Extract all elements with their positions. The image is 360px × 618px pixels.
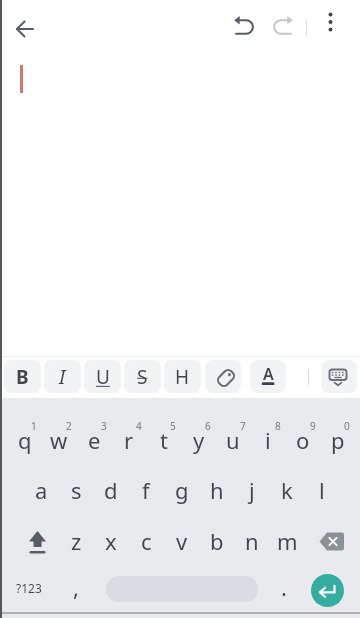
button[interactable]: p — [321, 417, 355, 463]
staticText: s — [71, 475, 82, 505]
staticText: q — [18, 425, 32, 455]
staticText: y — [193, 425, 205, 455]
staticText: b — [210, 526, 224, 556]
button[interactable]: y — [182, 417, 216, 463]
button[interactable]: S — [124, 360, 161, 393]
staticText: c — [141, 526, 152, 556]
button[interactable] — [311, 574, 344, 607]
button[interactable]: a — [24, 467, 58, 513]
button[interactable]: I — [44, 360, 81, 393]
button[interactable]: f — [129, 467, 163, 513]
staticText: e — [88, 425, 101, 455]
button[interactable]: x — [94, 518, 128, 564]
button[interactable]: , — [63, 572, 89, 602]
button[interactable]: . — [271, 572, 297, 602]
button[interactable]: o — [286, 417, 320, 463]
button[interactable]: g — [165, 467, 199, 513]
button[interactable]: z — [59, 518, 93, 564]
button[interactable] — [9, 13, 41, 45]
button[interactable]: r — [112, 417, 146, 463]
button[interactable]: n — [235, 518, 269, 564]
staticText: 6 — [205, 419, 211, 433]
button[interactable]: u — [216, 417, 250, 463]
button[interactable]: H — [164, 360, 201, 393]
button[interactable] — [321, 360, 357, 393]
button[interactable]: A — [250, 360, 286, 393]
button[interactable]: t — [147, 417, 181, 463]
button[interactable]: b — [200, 518, 234, 564]
button[interactable]: B — [4, 360, 41, 393]
button[interactable]: m — [270, 518, 304, 564]
staticText: 5 — [170, 419, 176, 433]
button[interactable] — [205, 360, 241, 393]
staticText: H — [175, 364, 190, 390]
staticText: B — [16, 364, 29, 390]
staticText: a — [35, 475, 48, 505]
button[interactable]: q — [8, 417, 42, 463]
staticText: 3 — [101, 419, 107, 433]
staticText: U — [96, 364, 110, 390]
button[interactable]: i — [251, 417, 285, 463]
staticText: 8 — [275, 419, 281, 433]
button[interactable]: ?123 — [7, 573, 51, 603]
button[interactable] — [20, 525, 56, 558]
staticText: w — [50, 425, 68, 455]
staticText: h — [210, 475, 224, 505]
staticText: ?123 — [16, 580, 42, 596]
staticText: u — [226, 425, 240, 455]
button[interactable]: l — [305, 467, 339, 513]
staticText: l — [319, 475, 325, 505]
staticText: S — [137, 364, 148, 390]
staticText: A — [263, 363, 274, 385]
staticText: 7 — [240, 419, 246, 433]
button[interactable]: k — [270, 467, 304, 513]
staticText: 4 — [136, 419, 142, 433]
staticText: j — [249, 475, 255, 505]
staticText: f — [142, 475, 150, 505]
staticText: 0 — [344, 419, 350, 433]
button[interactable] — [314, 525, 350, 558]
staticText: , — [73, 572, 79, 602]
button[interactable]: U — [84, 360, 121, 393]
staticText: v — [176, 526, 188, 556]
staticText: o — [296, 425, 310, 455]
staticText: 2 — [66, 419, 72, 433]
button[interactable] — [316, 8, 344, 36]
button[interactable] — [269, 13, 297, 41]
staticText: 1 — [31, 419, 37, 433]
staticText: t — [160, 425, 168, 455]
staticText: r — [124, 425, 134, 455]
button[interactable]: w — [42, 417, 76, 463]
button[interactable]: s — [59, 467, 93, 513]
button[interactable]: e — [77, 417, 111, 463]
staticText: 9 — [310, 419, 316, 433]
staticText: i — [265, 425, 271, 455]
staticText: x — [105, 526, 117, 556]
button[interactable]: h — [200, 467, 234, 513]
staticText: n — [245, 526, 259, 556]
staticText: d — [104, 475, 118, 505]
button[interactable]: v — [165, 518, 199, 564]
button[interactable] — [230, 13, 258, 41]
staticText: p — [331, 425, 345, 455]
staticText: m — [277, 526, 298, 556]
staticText: k — [281, 475, 293, 505]
staticText: I — [59, 363, 66, 390]
button[interactable]: d — [94, 467, 128, 513]
button[interactable]: j — [235, 467, 269, 513]
staticText: z — [71, 526, 82, 556]
button[interactable]: c — [129, 518, 163, 564]
staticText: g — [175, 475, 189, 505]
staticText: . — [281, 572, 287, 602]
